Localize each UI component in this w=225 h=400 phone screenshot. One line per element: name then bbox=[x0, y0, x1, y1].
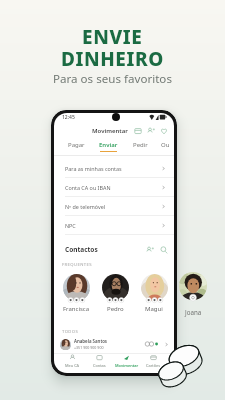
button[interactable]: Favoritos bbox=[160, 127, 168, 135]
button[interactable]: Ou bbox=[156, 141, 174, 151]
staticText: Para os seus favoritos bbox=[53, 71, 172, 87]
staticText: Pagar bbox=[68, 141, 85, 149]
button[interactable]: Magui bbox=[137, 272, 171, 313]
button[interactable]: Enviar bbox=[92, 141, 125, 152]
staticText: Movimentar bbox=[92, 127, 128, 135]
button[interactable]: Joana bbox=[177, 272, 209, 316]
staticText: Francisca bbox=[63, 305, 90, 313]
staticText: Conta CA ou IBAN bbox=[65, 184, 111, 191]
staticText: Magui bbox=[145, 305, 163, 313]
button[interactable]: Movimentar bbox=[113, 354, 140, 368]
button[interactable]: Pagar bbox=[60, 141, 92, 151]
staticText: FREQUENTES bbox=[62, 262, 92, 268]
staticText: Contas bbox=[93, 363, 106, 368]
staticText: ENVIE bbox=[82, 24, 143, 50]
button[interactable]: Pedro bbox=[98, 272, 132, 313]
button[interactable]: Contas bbox=[86, 354, 113, 368]
staticText: Anabela Santos bbox=[74, 338, 108, 344]
staticText: Pedir bbox=[133, 141, 148, 149]
button[interactable]: NPC bbox=[54, 216, 174, 234]
staticText: 12:45 bbox=[62, 114, 75, 121]
staticText: +351 900 900 900 bbox=[74, 345, 104, 350]
button[interactable]: Francisca bbox=[59, 272, 93, 313]
staticText: Nº de telemóvel bbox=[65, 203, 106, 210]
staticText: DINHEIRO bbox=[61, 46, 164, 72]
staticText: Pedro bbox=[107, 305, 124, 313]
staticText: Enviar bbox=[99, 141, 118, 149]
button[interactable]: Nº de telemóvel bbox=[54, 197, 174, 215]
button[interactable]: Adicionar contacto bbox=[146, 246, 154, 254]
button[interactable]: Pe bbox=[167, 354, 174, 368]
staticText: Ou bbox=[161, 141, 170, 149]
staticText: Joana bbox=[185, 308, 202, 316]
button[interactable]: Anabela Santos bbox=[54, 335, 174, 353]
staticText: Meu CA bbox=[65, 363, 80, 368]
staticText: NPC bbox=[65, 222, 76, 229]
button[interactable]: Para as minhas contas bbox=[54, 159, 174, 177]
button[interactable]: Pesquisar bbox=[160, 246, 168, 254]
staticText: Cartões bbox=[146, 363, 161, 368]
staticText: Para as minhas contas bbox=[65, 165, 122, 172]
button[interactable]: Contactos bbox=[147, 127, 155, 135]
staticText: Movimentar bbox=[115, 363, 139, 368]
button[interactable]: Cartões bbox=[134, 127, 142, 135]
button[interactable]: Pedir bbox=[125, 141, 156, 151]
button[interactable]: Cartões bbox=[140, 354, 167, 368]
button[interactable]: Meu CA bbox=[59, 354, 86, 368]
staticText: Contactos bbox=[65, 245, 98, 254]
button[interactable]: Conta CA ou IBAN bbox=[54, 178, 174, 196]
staticText: TODOS bbox=[62, 329, 79, 335]
